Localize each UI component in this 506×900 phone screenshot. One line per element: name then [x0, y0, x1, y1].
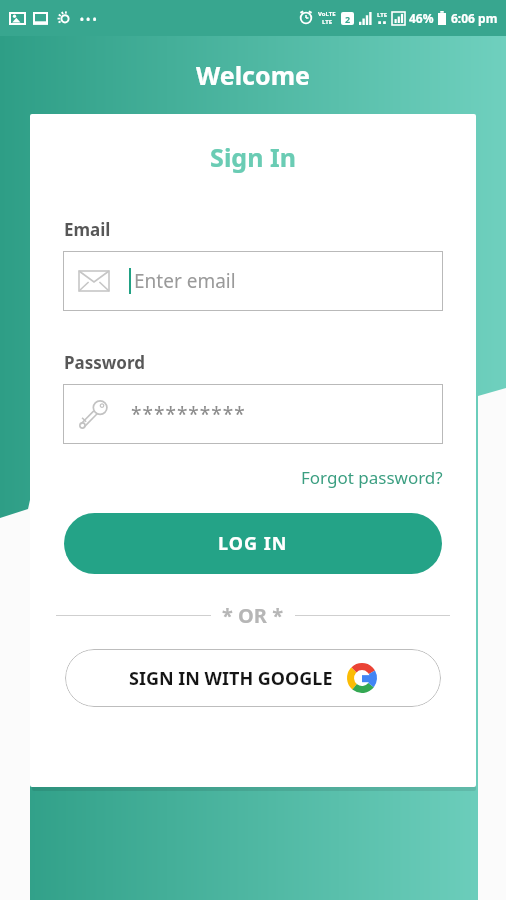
staticText: 6:06 pm [451, 10, 498, 26]
button[interactable]: SIGN IN WITH GOOGLE [65, 649, 441, 707]
staticText: ********** [131, 401, 246, 427]
staticText: Enter email [134, 268, 236, 294]
staticText: LTE [322, 18, 333, 26]
staticText: Password [64, 351, 145, 374]
staticText: * OR * [222, 602, 284, 629]
staticText: LTE [377, 11, 388, 19]
staticText: Sign In [30, 140, 476, 174]
staticText: 46% [409, 10, 434, 26]
staticText: LOG IN [218, 531, 288, 556]
button[interactable]: Enter email [63, 251, 443, 311]
staticText: • • • [80, 12, 97, 26]
staticText: Email [64, 218, 111, 241]
button[interactable]: Forgot password? [301, 466, 443, 489]
staticText: 2 [345, 13, 351, 25]
staticText: VoLTE [318, 10, 336, 18]
staticText: ▪ ▪ [378, 19, 387, 26]
staticText: SIGN IN WITH GOOGLE [129, 666, 333, 691]
staticText: Welcome [0, 58, 506, 92]
button[interactable]: ********** [63, 384, 443, 444]
button[interactable]: LOG IN [64, 513, 442, 574]
